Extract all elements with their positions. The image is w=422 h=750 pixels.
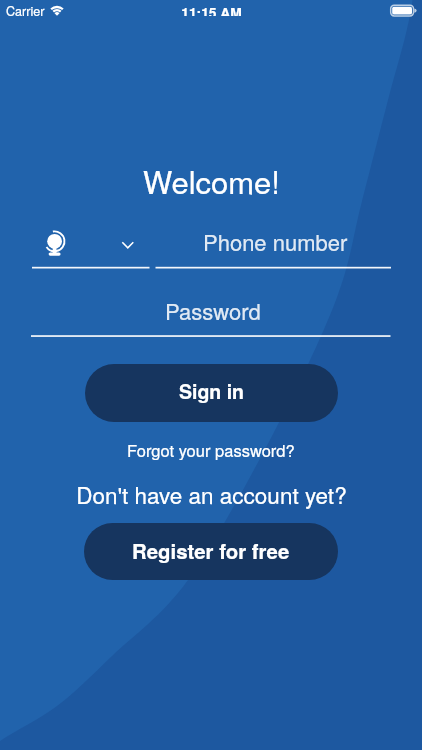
- staticText: Phone number: [203, 226, 348, 258]
- staticText: Welcome!: [143, 158, 280, 198]
- button[interactable]: Phone number: [157, 218, 393, 266]
- staticText: Password: [165, 295, 261, 327]
- staticText: Forgot your password?: [127, 438, 295, 460]
- staticText: 11:15 AM: [181, 2, 242, 16]
- staticText: Carrier: [6, 2, 45, 16]
- button[interactable]: Password: [33, 287, 393, 335]
- staticText: Don't have an account yet?: [76, 478, 347, 510]
- button[interactable]: [31, 222, 150, 268]
- button[interactable]: Forgot your password?: [127, 438, 295, 460]
- staticText: Register for free: [132, 536, 290, 565]
- button[interactable]: Sign in: [85, 364, 338, 422]
- button[interactable]: Register for free: [84, 523, 338, 580]
- staticText: Sign in: [179, 377, 245, 405]
